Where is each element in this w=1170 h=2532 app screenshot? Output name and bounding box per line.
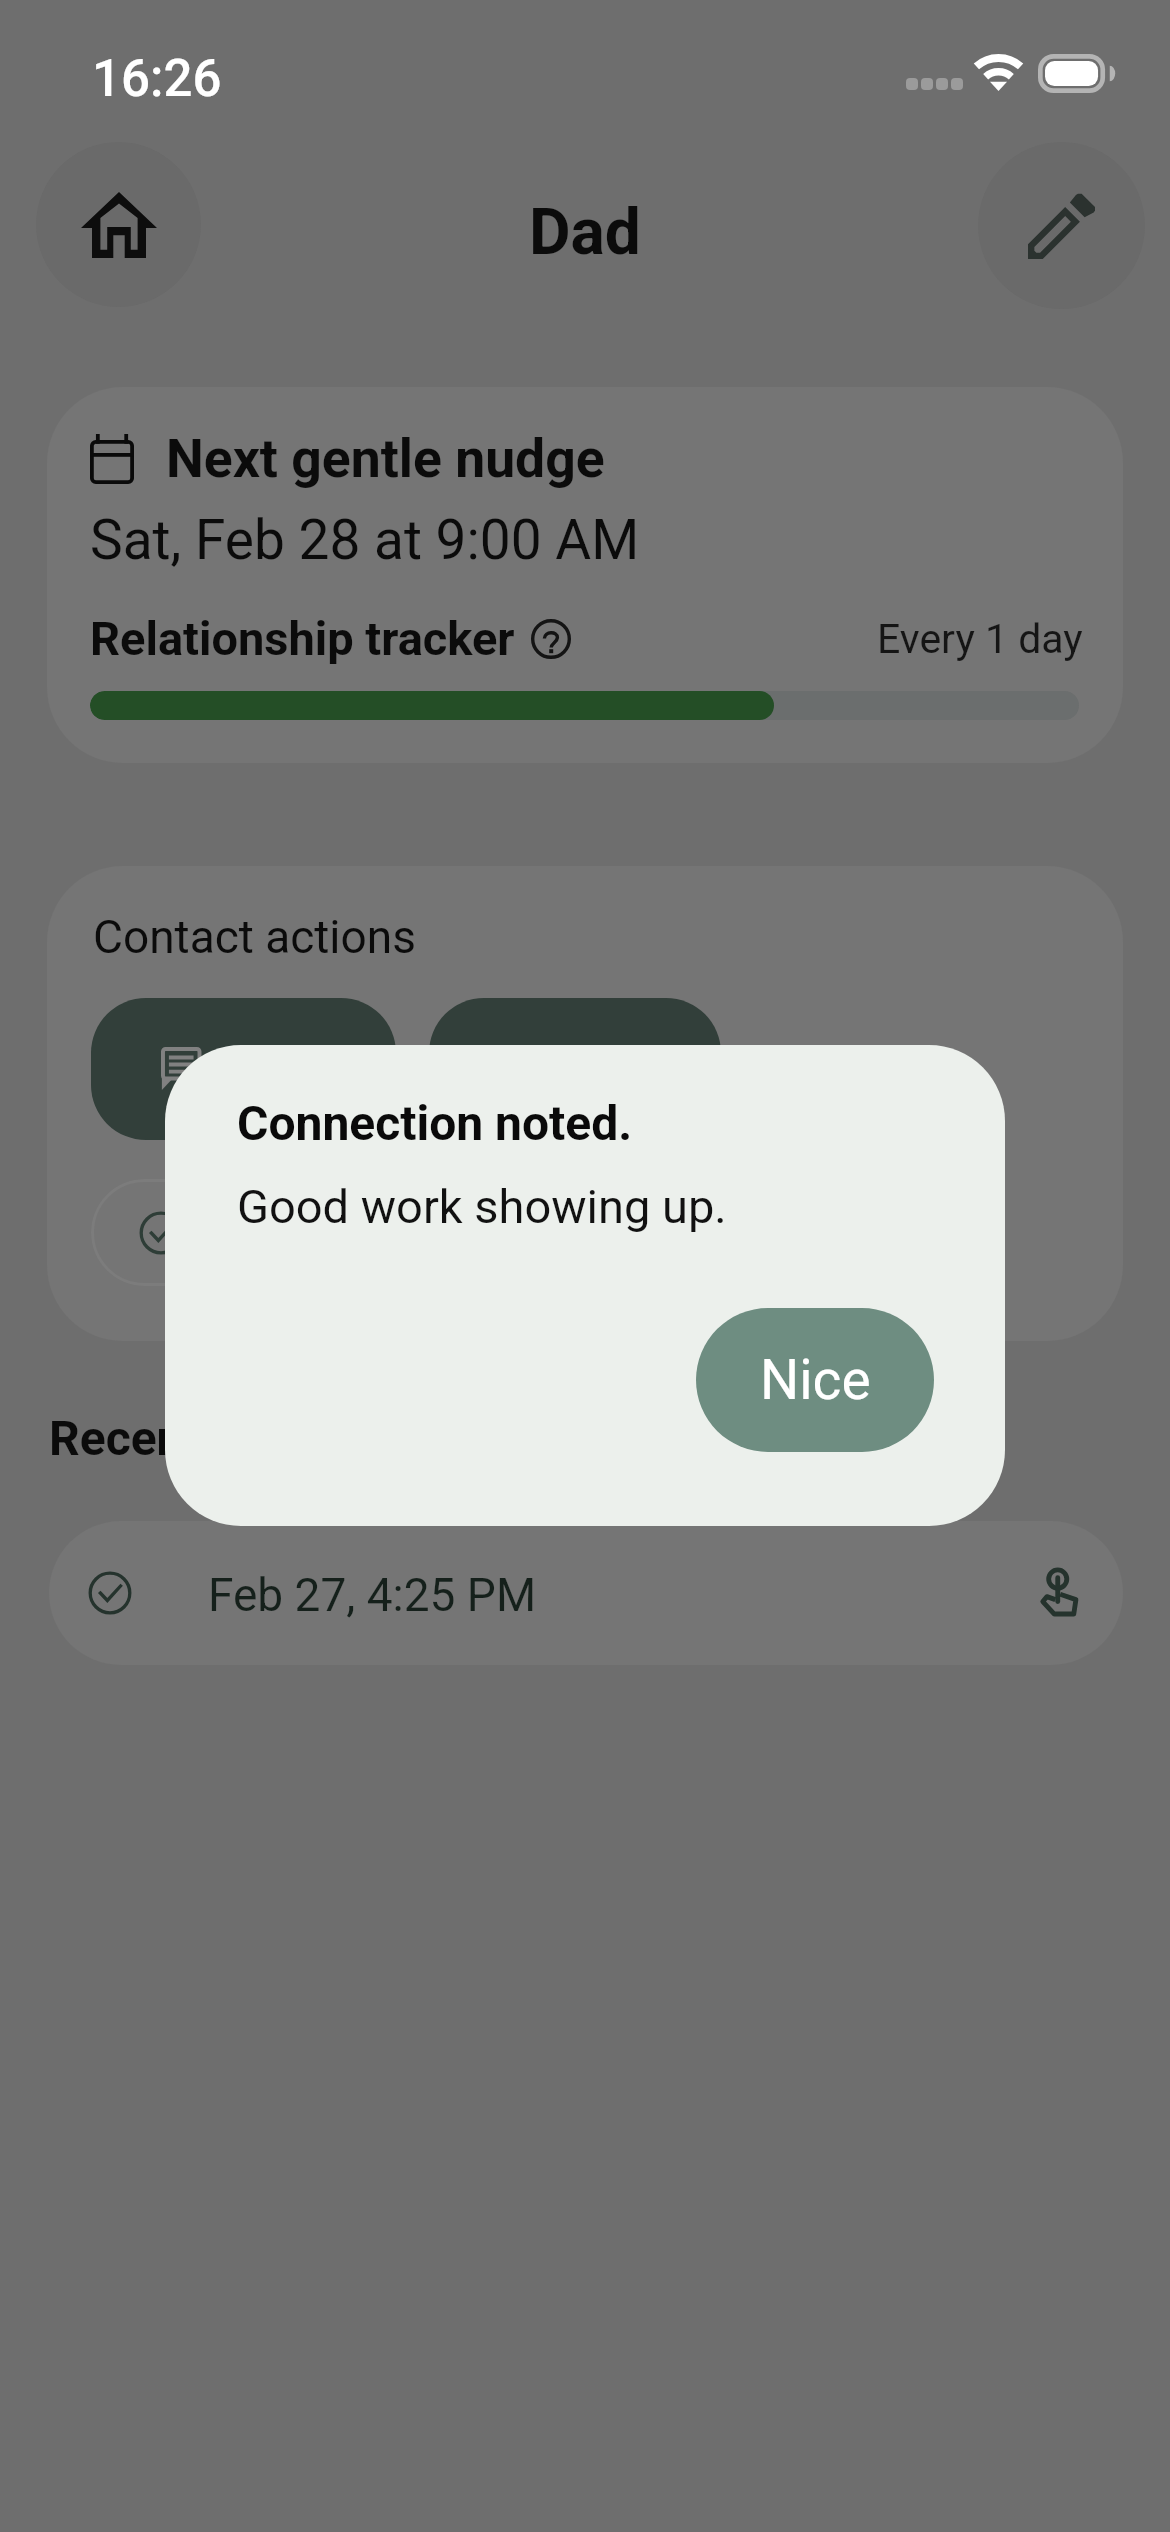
staticText: Next gentle nudge <box>166 427 605 490</box>
staticText: Good work showing up. <box>237 1179 727 1234</box>
button[interactable]: Edit <box>978 142 1145 309</box>
staticText: Feb 27, 4:25 PM <box>208 1568 537 1622</box>
staticText: Dad <box>529 195 641 270</box>
staticText: Sat, Feb 28 at 9:00 AM <box>90 508 640 572</box>
button[interactable]: Next gentle nudge <box>47 387 1123 763</box>
button[interactable]: Feb 27, 4:25 PM <box>49 1521 1123 1665</box>
staticText: Contact actions <box>93 910 416 964</box>
staticText: Recent <box>49 1410 200 1466</box>
staticText: Relationship tracker <box>90 611 515 666</box>
staticText: Connection noted. <box>237 1095 633 1151</box>
staticText: Nice <box>760 1348 871 1412</box>
button[interactable] <box>91 1179 396 1286</box>
staticText: Every 1 day <box>877 615 1083 663</box>
staticText: 16:26 <box>92 49 222 109</box>
button[interactable] <box>429 998 721 1140</box>
button[interactable] <box>91 998 396 1140</box>
button[interactable]: Nice <box>696 1308 934 1452</box>
button[interactable]: Home <box>36 142 201 307</box>
button[interactable]: Log touch <box>1041 1567 1077 1616</box>
